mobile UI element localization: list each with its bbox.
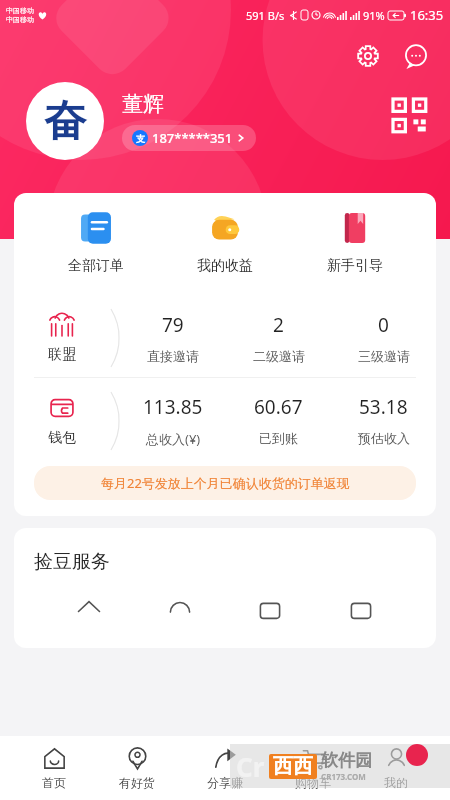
staticText: 我的 xyxy=(384,775,408,790)
staticText: 钱包 xyxy=(48,429,76,447)
staticText: 中国移动 xyxy=(6,15,34,24)
button[interactable]: 支 xyxy=(122,125,256,151)
staticText: 联盟 xyxy=(48,346,76,364)
staticText: 奋 xyxy=(44,95,86,148)
staticText: 总收入(¥) xyxy=(146,430,201,448)
staticText: CR173.COM xyxy=(321,771,366,782)
button[interactable]: 全部订单 xyxy=(48,209,144,277)
button[interactable]: 首页 xyxy=(32,743,76,794)
button[interactable]: 0 xyxy=(331,312,436,364)
button[interactable]: 奋 xyxy=(26,82,104,160)
button[interactable]: 113.85 xyxy=(120,394,226,448)
staticText: Cr xyxy=(236,749,265,784)
button[interactable]: 分享赚 xyxy=(197,743,253,794)
button[interactable]: Settings xyxy=(348,36,388,76)
button[interactable] xyxy=(74,598,104,628)
staticText: 53.18 xyxy=(359,394,408,420)
staticText: 我的捡豆豆 xyxy=(34,269,129,293)
button[interactable] xyxy=(165,598,195,628)
staticText: 购物车 xyxy=(295,775,331,790)
staticText: 0 xyxy=(378,312,389,338)
button[interactable]: 有好货 xyxy=(109,743,165,794)
staticText: 新手引导 xyxy=(327,257,383,275)
staticText: 187*****351 xyxy=(152,129,233,147)
staticText: 60.67 xyxy=(254,394,303,420)
button[interactable]: 2 xyxy=(226,312,331,364)
staticText: 91% xyxy=(363,8,385,23)
button[interactable]: Messages xyxy=(396,36,436,76)
staticText: 已到账 xyxy=(259,430,298,446)
staticText: 三级邀请 xyxy=(358,348,410,364)
staticText: 2 xyxy=(273,312,284,338)
staticText: 有好货 xyxy=(119,775,155,790)
button[interactable]: 购物车 xyxy=(285,743,341,794)
staticText: 支 xyxy=(136,133,145,144)
staticText: 591 B/s xyxy=(246,8,285,23)
staticText: 直接邀请 xyxy=(147,348,199,364)
staticText: 每月22号发放上个月已确认收货的订单返现 xyxy=(101,474,350,492)
staticText: 我的收益 xyxy=(197,257,253,275)
staticText: 79 xyxy=(162,312,184,338)
button[interactable]: 我的 xyxy=(374,743,418,794)
button[interactable]: 我的收益 xyxy=(177,209,273,277)
button[interactable]: 每月22号发放上个月已确认收货的订单返现 xyxy=(34,466,416,500)
button[interactable]: 60.67 xyxy=(226,394,331,446)
staticText: 西西 xyxy=(273,754,313,779)
button[interactable]: 新手引导 xyxy=(307,209,403,277)
staticText: 二级邀请 xyxy=(253,348,305,364)
button[interactable]: 79 xyxy=(120,312,226,364)
staticText: 中国移动 xyxy=(6,6,34,15)
staticText: 113.85 xyxy=(143,394,203,420)
staticText: 捡豆服务 xyxy=(34,550,110,574)
button[interactable]: 钱包 xyxy=(14,395,110,447)
staticText: 预估收入 xyxy=(358,430,410,446)
staticText: 16:35 xyxy=(410,6,444,24)
button[interactable]: QR code xyxy=(392,98,428,134)
button[interactable] xyxy=(346,598,376,628)
staticText: 全部订单 xyxy=(68,257,124,275)
button[interactable]: 联盟 xyxy=(14,312,110,364)
staticText: 董辉 xyxy=(122,91,164,117)
button[interactable] xyxy=(255,598,285,628)
staticText: 分享赚 xyxy=(207,775,243,790)
button[interactable]: 53.18 xyxy=(331,394,436,446)
staticText: 首页 xyxy=(42,775,66,790)
staticText: 软件园 xyxy=(321,750,372,771)
